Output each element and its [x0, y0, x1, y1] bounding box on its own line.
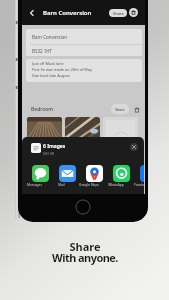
- button[interactable]: BS32 1HT: [32, 45, 142, 56]
- staticText: Messages: [27, 183, 42, 187]
- button[interactable]: Delete: [132, 105, 141, 114]
- staticText: Share: [115, 107, 125, 112]
- staticText: 6 Images: [43, 143, 66, 150]
- button[interactable]: Barn Conversion: [32, 29, 142, 44]
- button[interactable]: Share: [111, 104, 129, 114]
- button[interactable]: Close: [130, 143, 138, 151]
- staticText: Facebook: [134, 183, 144, 187]
- staticText: BS32 1HT: [32, 48, 53, 54]
- staticText: First fix was made on 20th of May: [32, 67, 92, 72]
- staticText: With anyone.: [52, 250, 118, 265]
- staticText: Share: [69, 239, 101, 254]
- staticText: Share: [113, 11, 124, 16]
- button[interactable]: Back: [27, 8, 37, 18]
- staticText: Google Maps: [79, 183, 99, 187]
- button[interactable]: WhatsApp: [113, 165, 130, 189]
- staticText: Barn Conversion: [32, 34, 68, 40]
- button[interactable]: Mail: [59, 165, 76, 189]
- staticText: WhatsApp: [108, 183, 124, 187]
- staticText: Mail: [58, 183, 65, 187]
- staticText: Just off Muck lane: [32, 61, 64, 66]
- button[interactable]: Messages: [32, 165, 49, 189]
- staticText: 683 KB: [43, 151, 55, 156]
- button[interactable]: Delete: [129, 8, 138, 17]
- button[interactable]: Google Maps: [86, 165, 103, 189]
- button[interactable]: Share: [109, 9, 127, 17]
- staticText: Due back late August: [32, 73, 70, 78]
- button[interactable]: Facebook: [140, 165, 144, 189]
- staticText: Bedroom: [31, 106, 54, 113]
- staticText: Barn Conversion: [43, 9, 92, 17]
